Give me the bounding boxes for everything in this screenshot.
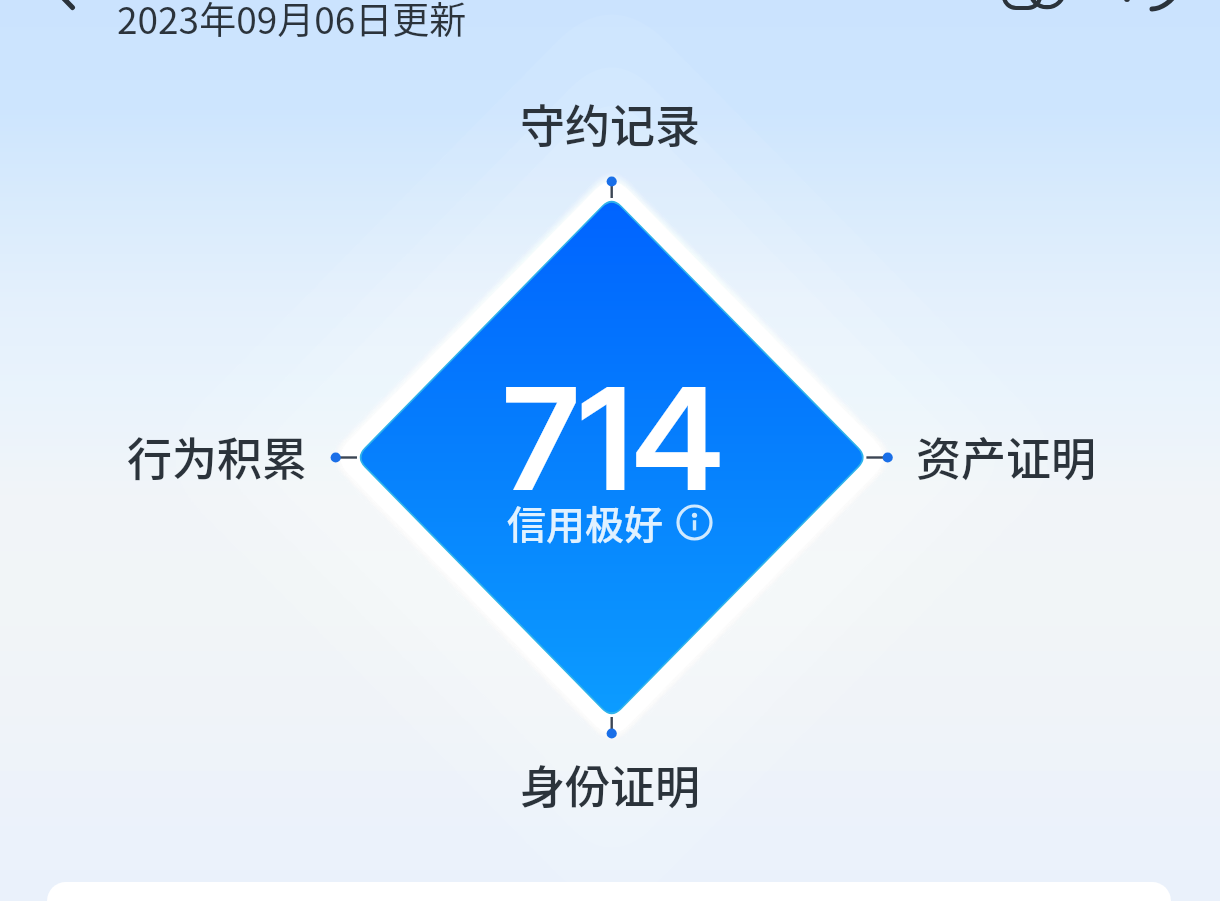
button[interactable]: 行为积累 xyxy=(127,424,308,489)
button[interactable]: 身份证明 xyxy=(520,752,701,817)
button[interactable]: 信用极好 xyxy=(507,494,713,550)
button[interactable]: More options xyxy=(1130,0,1190,16)
button[interactable]: Back xyxy=(40,0,96,16)
button[interactable]: 守约记录 xyxy=(520,91,701,156)
button[interactable]: Customer service xyxy=(995,0,1075,16)
button[interactable]: 资产证明 xyxy=(916,424,1097,489)
staticText: 资产证明 xyxy=(916,424,1097,489)
staticText: 守约记录 xyxy=(520,91,701,156)
staticText: 行为积累 xyxy=(127,424,308,489)
staticText: 身份证明 xyxy=(520,752,701,817)
staticText: 714 xyxy=(503,353,724,524)
staticText: 2023年09月06日更新 xyxy=(117,0,467,45)
staticText: 信用极好 xyxy=(507,494,664,550)
